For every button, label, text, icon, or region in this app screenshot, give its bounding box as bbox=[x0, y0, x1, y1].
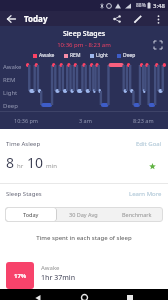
staticText: 30 Day Avg bbox=[69, 211, 98, 218]
staticText: Sleep Stages bbox=[6, 190, 42, 198]
staticText: min bbox=[46, 162, 57, 170]
button[interactable]: 30 Day Avg bbox=[57, 207, 110, 222]
button[interactable]: Learn More bbox=[129, 190, 162, 198]
button[interactable] bbox=[5, 13, 17, 25]
staticText: 10 bbox=[27, 153, 44, 172]
staticText: Awake bbox=[3, 63, 22, 76]
button[interactable] bbox=[132, 13, 144, 25]
button[interactable] bbox=[153, 14, 163, 24]
staticText: Light bbox=[3, 89, 18, 102]
staticText: Learn More bbox=[129, 190, 162, 198]
staticText: 8 bbox=[6, 153, 15, 172]
staticText: 17% bbox=[14, 272, 27, 280]
staticText: Benchmark bbox=[122, 211, 152, 218]
button[interactable]: Edit Goal bbox=[136, 140, 162, 148]
staticText: REM bbox=[70, 52, 81, 59]
button[interactable] bbox=[111, 13, 123, 25]
staticText: 8:23 am bbox=[133, 117, 154, 124]
button[interactable] bbox=[31, 292, 45, 300]
staticText: 3:48 bbox=[153, 2, 165, 10]
staticText: Edit Goal bbox=[136, 140, 162, 148]
button[interactable] bbox=[123, 292, 137, 300]
staticText: Awake bbox=[41, 264, 60, 272]
staticText: Deep bbox=[3, 102, 18, 110]
staticText: REM bbox=[3, 76, 16, 89]
staticText: Today bbox=[23, 211, 39, 218]
staticText: 10:36 pm bbox=[14, 117, 39, 124]
button[interactable]: 17% bbox=[6, 262, 162, 289]
staticText: hr bbox=[17, 162, 24, 170]
staticText: Today bbox=[24, 13, 48, 24]
staticText: 3 am bbox=[79, 117, 92, 124]
staticText: Deep bbox=[123, 52, 136, 59]
staticText: 1hr 37min bbox=[41, 273, 76, 283]
staticText: 88% bbox=[136, 2, 146, 9]
button[interactable] bbox=[77, 292, 91, 300]
button[interactable]: Benchmark bbox=[110, 207, 163, 222]
staticText: Sleep Stages bbox=[0, 29, 168, 39]
staticText: Light bbox=[96, 52, 108, 59]
staticText: Time spent in each stage of sleep bbox=[0, 234, 168, 242]
staticText: Time Asleep bbox=[6, 140, 41, 148]
staticText: 10:36 pm - 8:23 am bbox=[0, 41, 168, 49]
button[interactable]: Today bbox=[5, 207, 57, 222]
staticText: Awake bbox=[39, 52, 55, 59]
